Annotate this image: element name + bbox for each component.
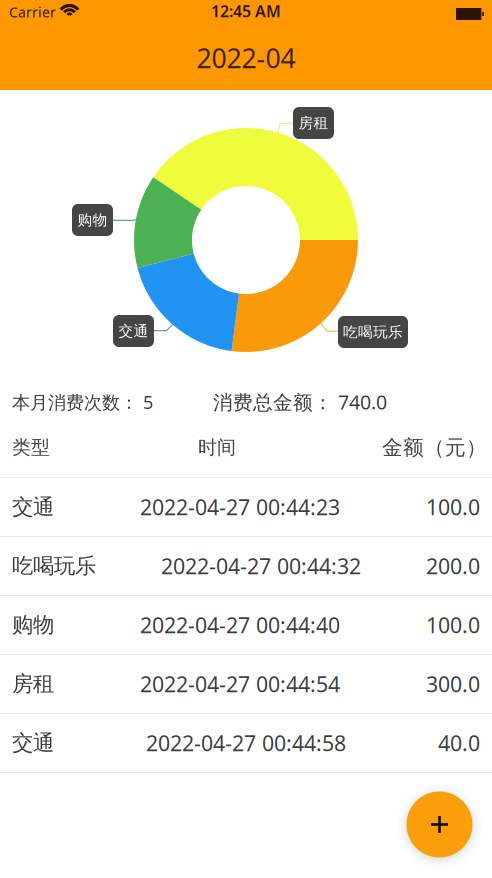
staticText: 购物 (12, 612, 54, 638)
staticText: 2022-04-27 00:44:54 (140, 669, 340, 699)
staticText: 300.0 (426, 669, 480, 699)
staticText: Carrier (9, 3, 56, 21)
staticText: 时间 (198, 436, 236, 459)
button[interactable]: Add expense (406, 791, 472, 857)
staticText: 吃喝玩乐 (343, 323, 403, 341)
staticText: 2022-04-27 00:44:32 (161, 551, 361, 581)
staticText: 2022-04 (196, 40, 295, 76)
staticText: 2022-04-27 00:44:23 (140, 492, 340, 522)
staticText: 交通 (12, 494, 54, 520)
staticText: 金额（元） (382, 434, 487, 460)
button[interactable]: 购物 (0, 596, 492, 655)
staticText: 100.0 (426, 492, 480, 522)
staticText: 交通 (118, 322, 148, 340)
staticText: 40.0 (438, 728, 480, 758)
staticText: 房租 (12, 671, 54, 697)
button[interactable]: 房租 (0, 655, 492, 714)
staticText: 消费总金额： 740.0 (213, 389, 387, 415)
staticText: 购物 (77, 211, 107, 229)
button[interactable]: 交通 (0, 478, 492, 537)
staticText: 100.0 (426, 610, 480, 640)
staticText: 2022-04-27 00:44:58 (146, 728, 346, 758)
staticText: 2022-04-27 00:44:40 (140, 610, 340, 640)
button[interactable]: 吃喝玩乐 (0, 537, 492, 596)
staticText: 200.0 (426, 551, 480, 581)
staticText: 12:45 AM (211, 0, 281, 22)
button[interactable]: 交通 (0, 714, 492, 773)
staticText: 房租 (298, 114, 328, 132)
staticText: 类型 (12, 436, 50, 459)
staticText: 吃喝玩乐 (12, 553, 96, 579)
staticText: 交通 (12, 730, 54, 756)
staticText: 本月消费次数： 5 (12, 390, 153, 414)
